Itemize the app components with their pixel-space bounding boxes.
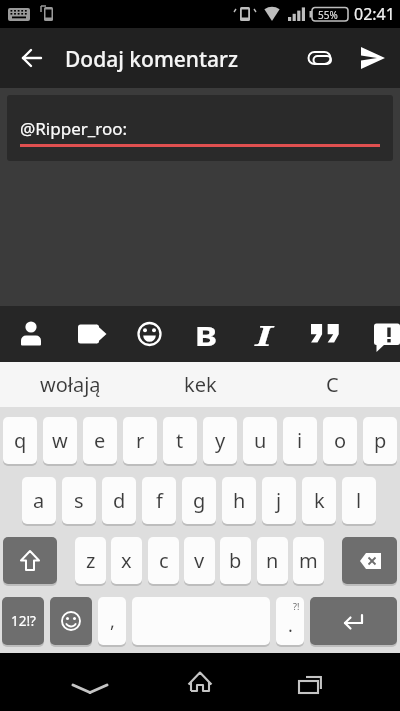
button[interactable]: [298, 36, 342, 80]
button[interactable]: [2, 306, 60, 362]
staticText: j: [276, 487, 282, 514]
staticText: C: [326, 371, 339, 398]
button[interactable]: n: [257, 537, 288, 584]
staticText: z: [86, 547, 96, 574]
button[interactable]: o: [323, 417, 357, 464]
staticText: ?!: [293, 600, 300, 612]
button[interactable]: q: [3, 417, 37, 464]
button[interactable]: b: [220, 537, 251, 584]
staticText: @Ripper_roo:: [20, 117, 128, 140]
staticText: 02:41: [354, 3, 395, 25]
button[interactable]: [234, 306, 292, 362]
button[interactable]: [280, 664, 340, 710]
staticText: y: [215, 427, 226, 454]
button[interactable]: [3, 537, 57, 584]
staticText: s: [74, 487, 84, 514]
button[interactable]: a: [22, 477, 56, 524]
button[interactable]: i: [283, 417, 317, 464]
staticText: r: [136, 427, 145, 454]
staticText: t: [176, 427, 184, 454]
staticText: a: [33, 487, 45, 514]
button[interactable]: wołają: [5, 362, 135, 407]
button[interactable]: p: [363, 417, 397, 464]
button[interactable]: y: [203, 417, 237, 464]
staticText: w: [52, 427, 68, 454]
staticText: i: [297, 427, 303, 454]
button[interactable]: 12!?: [2, 597, 44, 645]
staticText: e: [94, 427, 106, 454]
button[interactable]: @Ripper_roo:: [7, 95, 393, 161]
button[interactable]: [350, 36, 396, 80]
button[interactable]: j: [262, 477, 296, 524]
button[interactable]: [10, 28, 54, 88]
button[interactable]: g: [182, 477, 216, 524]
staticText: d: [113, 487, 126, 514]
button[interactable]: [350, 306, 400, 362]
button[interactable]: [118, 306, 176, 362]
button[interactable]: [170, 661, 230, 707]
button[interactable]: kek: [135, 362, 265, 407]
button[interactable]: [50, 597, 92, 645]
staticText: g: [193, 487, 206, 514]
button[interactable]: f: [142, 477, 176, 524]
staticText: q: [14, 427, 27, 454]
button[interactable]: h: [222, 477, 256, 524]
button[interactable]: ?!: [276, 597, 304, 645]
button[interactable]: s: [62, 477, 96, 524]
staticText: kek: [184, 371, 217, 398]
button[interactable]: c: [148, 537, 179, 584]
button[interactable]: t: [163, 417, 197, 464]
button[interactable]: [342, 537, 397, 584]
staticText: o: [334, 427, 347, 454]
button[interactable]: z: [75, 537, 106, 584]
button[interactable]: [55, 666, 125, 711]
staticText: .: [288, 613, 293, 638]
staticText: 55%: [318, 8, 338, 22]
button[interactable]: l: [342, 477, 376, 524]
button[interactable]: ,: [98, 597, 126, 645]
button[interactable]: r: [123, 417, 157, 464]
button[interactable]: C: [267, 362, 397, 407]
staticText: v: [194, 547, 205, 574]
staticText: p: [374, 427, 387, 454]
staticText: l: [356, 487, 362, 514]
button[interactable]: u: [243, 417, 277, 464]
staticText: k: [314, 487, 325, 514]
button[interactable]: [292, 306, 350, 362]
staticText: ,: [110, 609, 115, 634]
button[interactable]: d: [102, 477, 136, 524]
button[interactable]: e: [83, 417, 117, 464]
staticText: x: [121, 547, 132, 574]
button[interactable]: k: [302, 477, 336, 524]
staticText: u: [254, 427, 267, 454]
button[interactable]: x: [111, 537, 142, 584]
staticText: 12!?: [11, 612, 36, 630]
button[interactable]: [310, 597, 397, 645]
staticText: h: [233, 487, 246, 514]
staticText: c: [159, 547, 169, 574]
staticText: wołają: [40, 371, 101, 398]
button[interactable]: [176, 306, 234, 362]
staticText: I: [255, 316, 273, 354]
button[interactable]: w: [43, 417, 77, 464]
staticText: Dodaj komentarz: [65, 45, 238, 74]
button[interactable]: v: [184, 537, 215, 584]
staticText: B: [195, 317, 217, 354]
staticText: f: [156, 487, 163, 514]
staticText: b: [229, 547, 242, 574]
staticText: n: [266, 547, 279, 574]
staticText: m: [299, 547, 318, 574]
button[interactable]: m: [293, 537, 324, 584]
button[interactable]: [60, 306, 118, 362]
